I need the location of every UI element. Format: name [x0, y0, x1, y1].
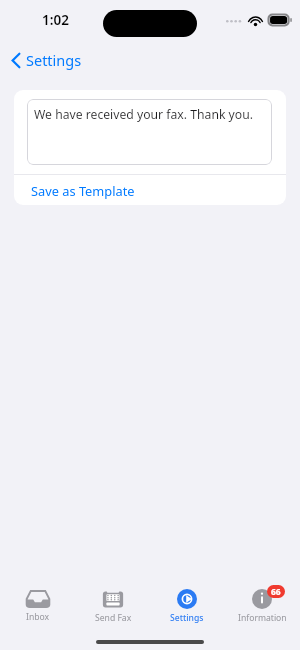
staticText: Settings — [170, 612, 204, 624]
button[interactable]: Information — [226, 589, 298, 624]
button[interactable]: Settings — [7, 46, 86, 74]
button[interactable]: Save as Template — [14, 175, 286, 205]
staticText: Settings — [26, 50, 82, 70]
staticText: We have received your fax. Thank you. — [34, 106, 253, 123]
button[interactable]: We have received your fax. Thank you. — [27, 99, 272, 165]
staticText: Inbox — [26, 611, 50, 623]
staticText: Send Fax — [95, 612, 132, 624]
button[interactable]: Settings — [151, 589, 223, 624]
staticText: 66 — [271, 586, 281, 598]
button[interactable]: Send Fax — [77, 589, 149, 624]
staticText: 1:02 — [42, 11, 69, 29]
staticText: Information — [238, 612, 287, 624]
button[interactable]: Inbox — [2, 589, 74, 623]
staticText: Save as Template — [31, 182, 135, 199]
